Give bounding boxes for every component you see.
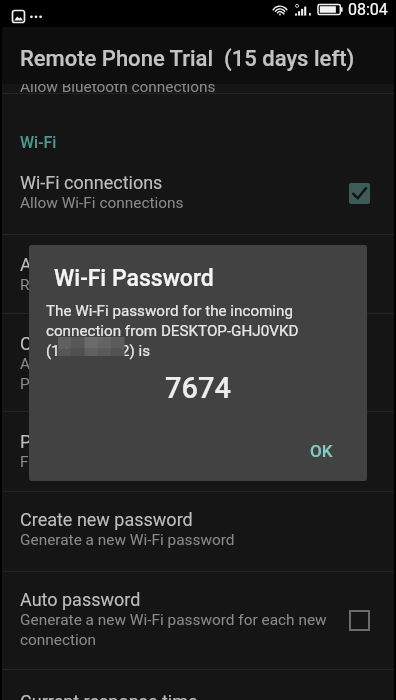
button[interactable]: Auto password — [0, 589, 396, 649]
button[interactable]: OK — [302, 435, 341, 467]
button[interactable]: Password — [0, 431, 396, 471]
staticText: Allow Wi-Fi connections — [20, 194, 184, 212]
button[interactable]: Create new password — [0, 509, 396, 549]
staticText: Create new password — [20, 509, 193, 530]
staticText: OK — [310, 441, 333, 461]
staticText: For access to this phone — [20, 453, 188, 471]
staticText: Wi-Fi — [20, 133, 57, 152]
staticText: Password — [20, 431, 100, 452]
staticText: 08:04 — [348, 0, 388, 19]
button[interactable]: Current response time — [0, 691, 396, 700]
staticText: Allow Bluetooth connections — [20, 78, 216, 96]
staticText: Wi-Fi Password — [54, 265, 214, 292]
staticText: Remote Phone Trial (15 days left) — [20, 46, 355, 72]
staticText: Wi-Fi connections — [20, 172, 163, 193]
staticText: Current response time — [20, 691, 198, 700]
staticText: Auto connect — [20, 254, 127, 275]
staticText: Current password — [20, 333, 162, 354]
staticText: A password to access this phone PC — [20, 355, 247, 393]
staticText: 7674 — [165, 371, 231, 405]
staticText: Auto password — [20, 589, 141, 610]
staticText: Generate a new Wi-Fi password — [20, 531, 235, 549]
button[interactable]: Wi-Fi connections — [0, 172, 396, 212]
staticText: Generate a new Wi-Fi password for each n… — [20, 611, 327, 649]
button[interactable]: Toggle — [348, 609, 370, 631]
staticText: Reconnect when connection is lost — [20, 276, 258, 294]
button[interactable]: Current password — [0, 333, 396, 393]
button[interactable]: Auto connect — [0, 254, 396, 294]
staticText: The Wi-Fi password for the incoming conn… — [46, 302, 299, 359]
button[interactable]: Toggle — [348, 182, 370, 204]
